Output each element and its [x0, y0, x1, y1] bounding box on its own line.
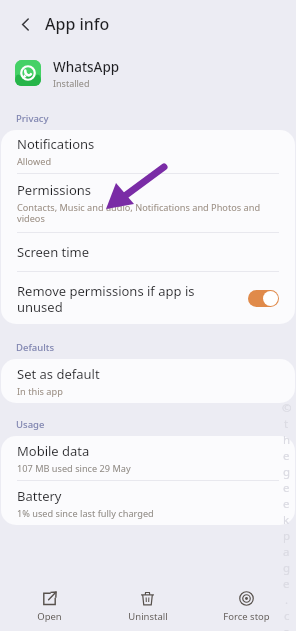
staticText: Force stop: [223, 610, 270, 623]
staticText: Defaults: [16, 341, 55, 354]
staticText: p: [283, 528, 291, 544]
staticText: In this app: [17, 385, 63, 398]
staticText: ©: [282, 400, 292, 416]
button[interactable]: Mobile data: [1, 436, 295, 480]
staticText: 1% used since last fully charged: [17, 507, 154, 520]
button[interactable]: Open: [0, 583, 98, 631]
staticText: g: [283, 464, 291, 480]
button[interactable]: Notifications: [1, 130, 295, 173]
staticText: e: [283, 576, 290, 592]
staticText: Installed: [53, 77, 90, 89]
staticText: Allowed: [17, 155, 52, 168]
staticText: e: [283, 496, 290, 512]
staticText: Privacy: [16, 112, 49, 125]
staticText: c: [284, 608, 290, 624]
staticText: Permissions: [17, 181, 92, 199]
staticText: o: [283, 624, 290, 631]
staticText: k: [283, 512, 290, 528]
staticText: Remove permissions if app is unused: [17, 282, 238, 315]
button[interactable]: WhatsApp: [0, 48, 296, 98]
staticText: Mobile data: [17, 442, 90, 460]
button[interactable]: Uninstall: [98, 583, 197, 631]
button[interactable]: Remove permissions if app is unused: [1, 272, 295, 324]
staticText: 107 MB used since 29 May: [17, 462, 131, 475]
staticText: t: [284, 416, 289, 432]
staticText: Set as default: [17, 365, 100, 383]
staticText: e: [283, 448, 290, 464]
staticText: App info: [45, 13, 110, 35]
staticText: h: [283, 432, 291, 448]
staticText: g: [283, 560, 291, 576]
staticText: Notifications: [17, 135, 95, 153]
other: Uninstall: [140, 591, 155, 606]
staticText: e: [283, 480, 290, 496]
button[interactable]: Battery: [1, 481, 295, 525]
staticText: Open: [37, 610, 62, 623]
button[interactable]: Set as default: [1, 359, 295, 403]
staticText: Battery: [17, 487, 62, 505]
staticText: Uninstall: [128, 610, 168, 623]
button[interactable]: Screen time: [1, 233, 295, 271]
staticText: Contacts, Music and audio, Notifications…: [17, 201, 279, 225]
button[interactable]: Force stop: [197, 583, 296, 631]
other: Open: [42, 591, 57, 606]
staticText: a: [283, 544, 290, 560]
button[interactable]: Permissions: [1, 174, 295, 232]
staticText: WhatsApp: [53, 58, 120, 76]
staticText: Screen time: [17, 243, 90, 261]
button[interactable]: Back: [10, 9, 40, 39]
other: Force stop: [239, 591, 254, 606]
staticText: Usage: [16, 418, 45, 431]
